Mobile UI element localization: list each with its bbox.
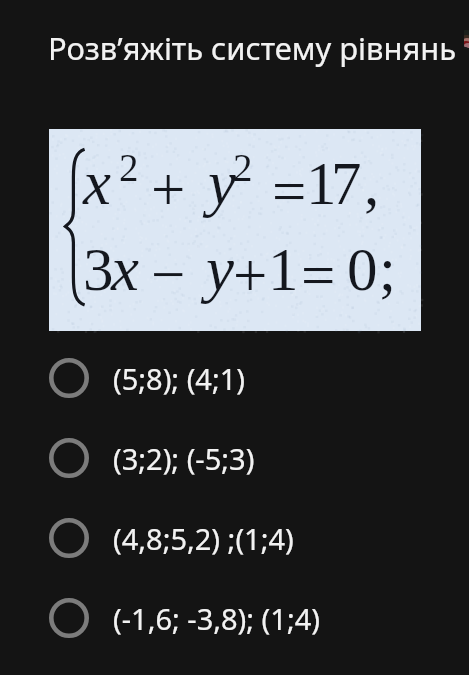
staticText: + [151,156,186,224]
staticText: x [111,234,139,304]
staticText: 1 [268,236,299,304]
staticText: (-1,6; -3,8); (1;4) [113,599,320,638]
button[interactable]: (4,8;5,2) ;(1;4) [0,498,469,578]
staticText: 3 [83,236,114,304]
staticText: (4,8;5,2) ;(1;4) [113,519,294,558]
button[interactable]: (3;2); (-5;3) [0,418,469,498]
staticText: , [364,150,380,218]
staticText: (5;8); (4;1) [113,359,246,398]
staticText: 7 [331,150,362,218]
staticText: Розв’яжіть систему рівнянь [48,27,457,69]
staticText: + [233,242,268,310]
staticText: x [83,148,111,218]
staticText: ; [379,236,396,304]
staticText: 0 [347,236,378,304]
button[interactable]: (5;8); (4;1) [0,338,469,418]
staticText: − [151,241,186,309]
staticText: y [208,148,236,218]
staticText: = [301,242,336,310]
staticText: 2 [119,146,139,189]
staticText: 2 [233,146,253,189]
staticText: 1 [306,150,337,218]
staticText: y [206,234,234,304]
staticText: = [272,158,307,226]
staticText: (3;2); (-5;3) [113,439,255,478]
button[interactable]: (-1,6; -3,8); (1;4) [0,578,469,658]
